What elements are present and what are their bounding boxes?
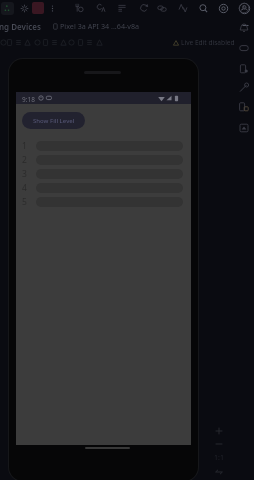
button[interactable]: 1:1 [214, 453, 224, 463]
staticText: Pixel 3a API 34 ...64-v8a [60, 21, 140, 31]
button[interactable]: Volume up [5, 38, 14, 47]
button[interactable]: App module [32, 2, 44, 14]
button[interactable]: Running Devices [238, 101, 250, 113]
button[interactable]: Account [238, 2, 251, 15]
button[interactable]: Live Edit disabled [173, 38, 235, 47]
button[interactable]: Show Fill Level [22, 112, 85, 129]
button[interactable]: Recompose [96, 3, 106, 13]
button[interactable]: Screenshot [74, 3, 84, 13]
button[interactable]: Device Manager [238, 63, 250, 75]
button[interactable]: Volume down [14, 38, 23, 47]
button[interactable]: More [95, 38, 104, 47]
button[interactable]: Zoom in [214, 426, 224, 436]
button[interactable]: Hide panel [241, 21, 250, 30]
button[interactable]: Account [238, 2, 250, 14]
staticText: 9:18 [22, 95, 35, 104]
button[interactable]: 4 [16, 181, 191, 195]
button[interactable]: Search [198, 3, 209, 14]
button[interactable]: Zoom to fit [214, 467, 224, 477]
button[interactable]: Home [50, 38, 59, 47]
button[interactable]: Power [0, 38, 8, 47]
button[interactable]: Attach debugger [157, 3, 167, 13]
button[interactable]: Zoom out [214, 439, 224, 449]
button[interactable]: Gradle [238, 42, 250, 54]
button[interactable]: Rotate left [23, 38, 32, 47]
staticText: 5 [22, 196, 36, 208]
staticText: 4 [22, 182, 36, 194]
button[interactable]: Layout Inspector [117, 3, 127, 13]
button[interactable]: 5 [16, 195, 191, 209]
staticText: Live Edit disabled [181, 38, 235, 47]
button[interactable]: Project [1, 2, 14, 15]
button[interactable]: 1 [16, 139, 191, 153]
staticText: ng Devices [0, 21, 41, 32]
button[interactable]: 2 [16, 153, 191, 167]
staticText: 2 [22, 154, 36, 166]
button[interactable]: 3 [16, 167, 191, 181]
button[interactable]: Preferences [218, 3, 229, 14]
button[interactable]: Build [238, 82, 250, 94]
staticText: Show Fill Level [33, 117, 75, 125]
button[interactable]: Back [41, 38, 50, 47]
button[interactable]: Settings [19, 3, 30, 14]
button[interactable]: Rotate right [33, 38, 42, 47]
button[interactable]: Notifications [238, 22, 250, 34]
button[interactable]: Snapshot [85, 38, 94, 47]
button[interactable]: Overview [59, 38, 68, 47]
button[interactable]: Screenshot [67, 38, 76, 47]
button[interactable]: Sync project [139, 3, 149, 13]
staticText: 3 [22, 168, 36, 180]
button[interactable]: Pixel 3a API 34 ...64-v8a [52, 21, 140, 31]
button[interactable]: Translations [178, 3, 188, 13]
button[interactable]: Resource Manager [238, 122, 250, 134]
button[interactable]: Record [76, 38, 85, 47]
button[interactable]: More options [48, 4, 57, 13]
